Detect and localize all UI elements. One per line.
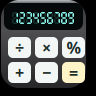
staticText: −: [42, 62, 51, 83]
staticText: +: [15, 62, 24, 83]
button[interactable]: ×: [35, 37, 58, 58]
button[interactable]: −: [35, 62, 58, 83]
staticText: ÷: [15, 37, 24, 58]
button[interactable]: =: [62, 62, 85, 83]
button[interactable]: %: [62, 37, 85, 58]
button[interactable]: ÷: [8, 37, 31, 58]
staticText: %: [66, 37, 80, 58]
staticText: =: [69, 62, 78, 83]
button[interactable]: +: [8, 62, 31, 83]
staticText: ×: [42, 37, 51, 58]
